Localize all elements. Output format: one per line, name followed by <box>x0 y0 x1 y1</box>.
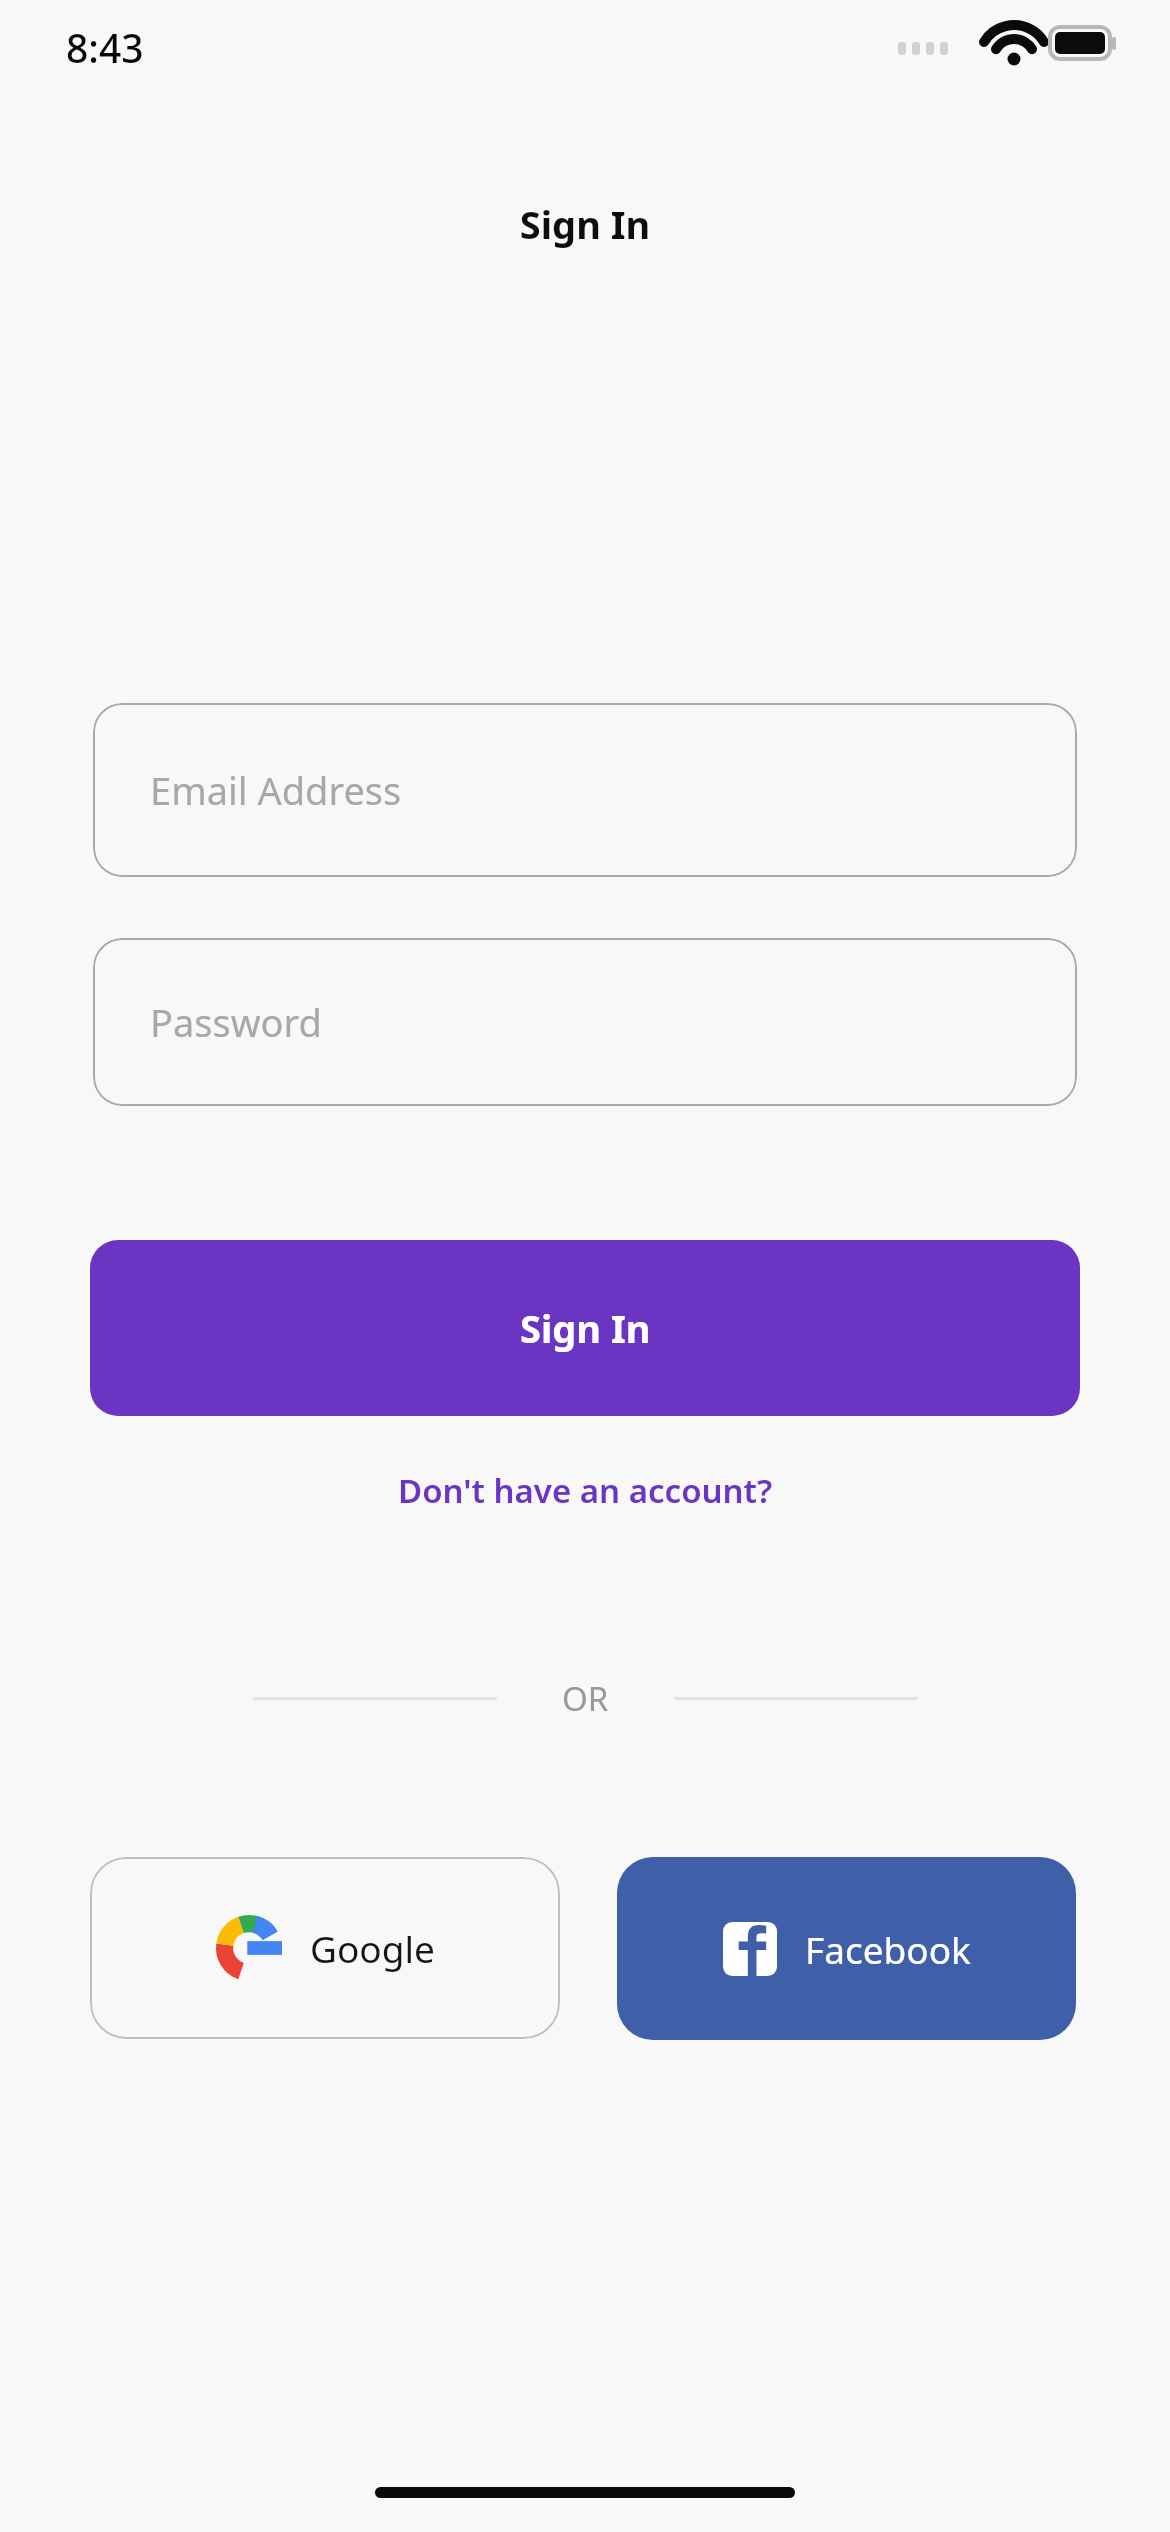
other: Facebook <box>723 1922 777 1976</box>
staticText: Google <box>310 1923 435 1973</box>
button[interactable]: Google <box>90 1857 560 2039</box>
staticText: Email Address <box>150 764 402 816</box>
button[interactable]: Facebook <box>617 1857 1076 2040</box>
staticText: Facebook <box>805 1924 971 1974</box>
staticText: Password <box>150 996 322 1048</box>
staticText: Don't have an account? <box>398 1468 773 1513</box>
button[interactable]: Sign In <box>90 1240 1080 1416</box>
button[interactable]: Password <box>93 938 1077 1106</box>
staticText: 8:43 <box>66 21 144 74</box>
staticText: Sign In <box>0 198 1170 250</box>
other: Google <box>216 1915 282 1981</box>
button[interactable]: Don't have an account? <box>380 1458 791 1523</box>
button[interactable]: Email Address <box>93 703 1077 877</box>
staticText: OR <box>562 1676 609 1721</box>
staticText: Sign In <box>520 1302 651 1354</box>
